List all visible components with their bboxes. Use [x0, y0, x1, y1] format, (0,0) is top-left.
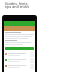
button[interactable]: Guides, hints, tips and tricks [5, 1, 30, 9]
button[interactable] [4, 15, 35, 72]
button[interactable] [5, 63, 34, 69]
staticText: Guides, hints, tips and tricks [5, 1, 30, 9]
button[interactable] [5, 51, 34, 57]
button[interactable] [5, 57, 34, 63]
button[interactable] [5, 47, 34, 50]
